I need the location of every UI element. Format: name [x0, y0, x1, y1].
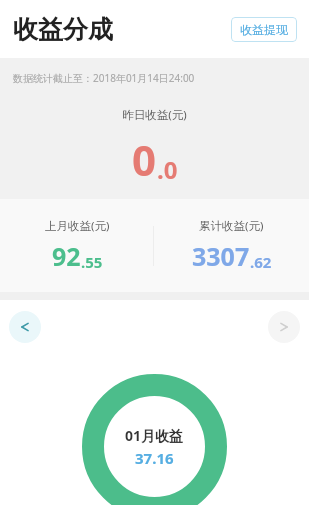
- button[interactable]: Next month: [268, 311, 300, 343]
- staticText: 3307: [192, 239, 250, 273]
- staticText: .55: [81, 252, 103, 272]
- staticText: 01月收益: [125, 426, 184, 445]
- staticText: 累计收益(元): [199, 218, 264, 234]
- staticText: 收益提现: [240, 22, 288, 37]
- button[interactable]: Previous month: [9, 311, 41, 343]
- staticText: 上月收益(元): [45, 218, 110, 234]
- staticText: .0: [157, 153, 178, 186]
- staticText: 0: [132, 131, 157, 188]
- button[interactable]: 上月收益(元): [0, 218, 154, 273]
- staticText: 数据统计截止至：2018年01月14日24:00: [13, 71, 195, 85]
- staticText: .62: [250, 252, 272, 272]
- staticText: 收益分成: [13, 14, 113, 45]
- button[interactable]: 累计收益(元): [154, 218, 309, 273]
- staticText: 92: [52, 239, 81, 273]
- button[interactable]: 收益提现: [231, 17, 297, 42]
- staticText: 昨日收益(元): [122, 107, 187, 123]
- staticText: 37.16: [135, 448, 174, 468]
